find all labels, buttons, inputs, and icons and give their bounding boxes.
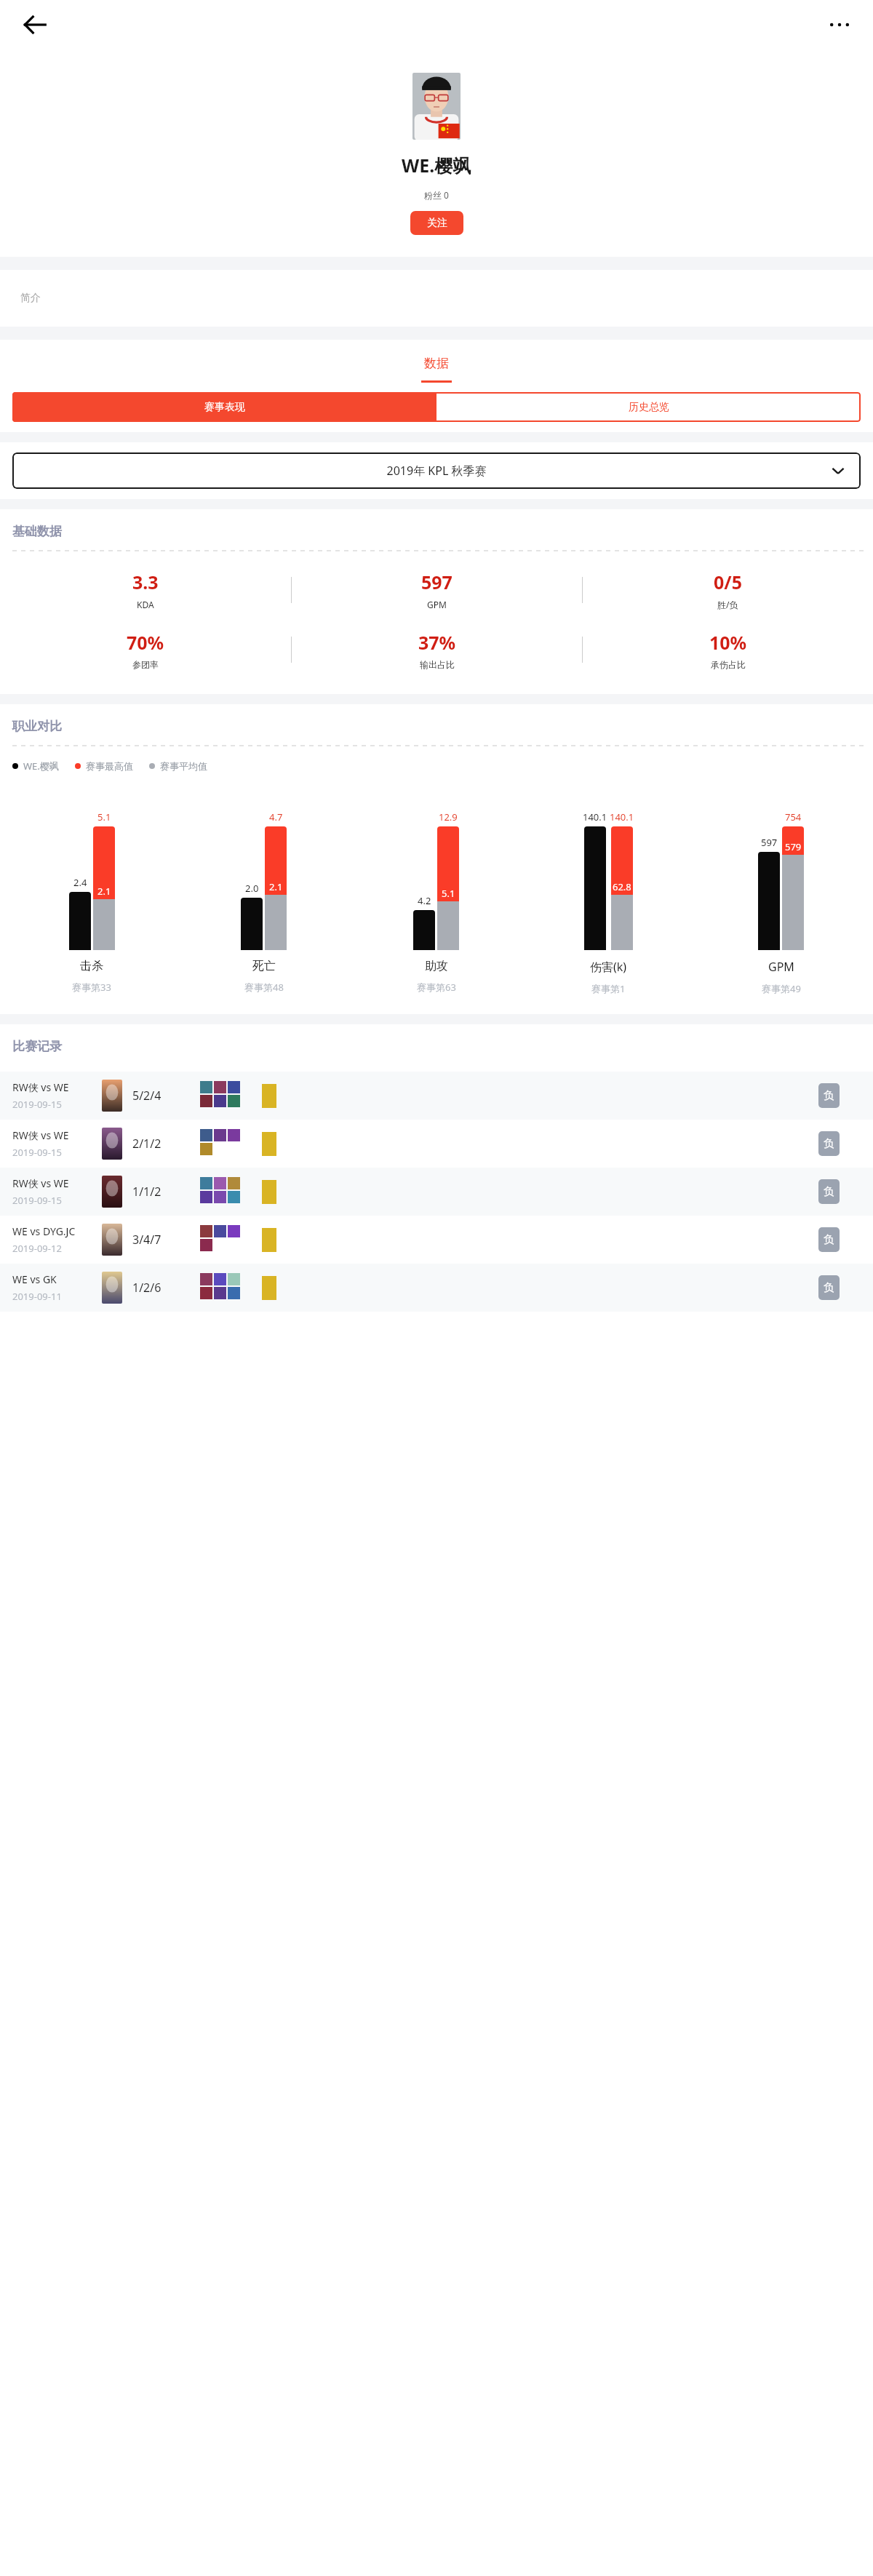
staticText: 赛事平均值 [160, 760, 207, 772]
staticText: 140.1 [583, 810, 607, 824]
staticText: 负 [824, 1137, 834, 1151]
button[interactable]: RW侠 vs WE [0, 1168, 873, 1216]
staticText: 1/2/6 [132, 1280, 183, 1296]
staticText: 赛事第63 [417, 981, 456, 994]
staticText: 伤害(k) [590, 959, 627, 975]
staticText: 赛事第1 [591, 982, 626, 995]
staticText: RW侠 vs WE [12, 1176, 69, 1190]
staticText: RW侠 vs WE [12, 1128, 69, 1142]
staticText: 4.7 [269, 810, 283, 824]
staticText: 赛事第49 [762, 982, 801, 995]
staticText: GPM [427, 599, 447, 610]
staticText: 职业对比 [12, 719, 62, 734]
staticText: 赛事最高值 [86, 760, 133, 772]
staticText: 死亡 [252, 959, 276, 973]
staticText: 2/1/2 [132, 1136, 183, 1152]
staticText: 12.9 [439, 810, 458, 824]
staticText: 击杀 [80, 959, 103, 973]
staticText: 比赛记录 [12, 1039, 62, 1054]
staticText: 赛事第33 [72, 981, 111, 994]
button[interactable]: 历史总览 [436, 392, 861, 422]
button[interactable]: Back [16, 6, 54, 44]
staticText: WE.樱飒 [402, 153, 471, 178]
staticText: 70% [127, 630, 164, 655]
button[interactable]: RW侠 vs WE [0, 1120, 873, 1168]
staticText: 3/4/7 [132, 1232, 183, 1248]
staticText: 负 [824, 1281, 834, 1295]
staticText: 37% [418, 630, 456, 655]
staticText: 1/1/2 [132, 1184, 183, 1200]
staticText: 579 [785, 840, 802, 853]
staticText: 2019-09-15 [12, 1146, 62, 1159]
button[interactable]: 2019年 KPL 秋季赛 [12, 452, 861, 489]
staticText: 负 [824, 1089, 834, 1103]
button[interactable]: 数据 [421, 356, 452, 383]
staticText: 2019-09-11 [12, 1290, 62, 1303]
staticText: 4.2 [418, 894, 431, 907]
staticText: 负 [824, 1185, 834, 1199]
staticText: 2.4 [73, 876, 87, 889]
staticText: 关注 [427, 217, 447, 230]
button[interactable]: More options [821, 6, 858, 44]
staticText: 简介 [20, 292, 41, 305]
staticText: 粉丝 0 [424, 189, 449, 201]
button[interactable]: RW侠 vs WE [0, 1072, 873, 1120]
staticText: 参团率 [132, 659, 159, 670]
staticText: 2.0 [245, 882, 259, 895]
staticText: 承伤占比 [711, 659, 746, 670]
staticText: 597 [761, 836, 778, 849]
staticText: 助攻 [425, 959, 448, 973]
staticText: 2019年 KPL 秋季赛 [12, 463, 861, 479]
staticText: 2019-09-12 [12, 1242, 62, 1255]
staticText: 历史总览 [629, 401, 669, 414]
button[interactable]: 赛事表现 [12, 392, 436, 422]
staticText: 胜/负 [717, 599, 738, 610]
button[interactable]: 关注 [410, 211, 463, 235]
staticText: 输出占比 [420, 659, 455, 670]
staticText: 2019-09-15 [12, 1194, 62, 1207]
staticText: 5.1 [442, 887, 455, 900]
staticText: 2.1 [97, 885, 111, 898]
staticText: 140.1 [610, 810, 634, 824]
button[interactable]: WE vs DYG.JC [0, 1216, 873, 1264]
staticText: GPM [768, 959, 794, 975]
staticText: 5/2/4 [132, 1088, 183, 1104]
staticText: 赛事第48 [244, 981, 284, 994]
staticText: 3.3 [132, 570, 159, 594]
staticText: 10% [709, 630, 747, 655]
staticText: 基础数据 [12, 524, 62, 539]
staticText: 0/5 [714, 570, 742, 594]
staticText: 754 [785, 810, 802, 824]
staticText: KDA [137, 599, 154, 610]
staticText: 负 [824, 1233, 834, 1247]
button[interactable]: WE vs GK [0, 1264, 873, 1312]
staticText: 597 [421, 570, 453, 594]
staticText: 赛事表现 [204, 401, 245, 414]
staticText: WE vs DYG.JC [12, 1224, 76, 1238]
staticText: 数据 [424, 356, 449, 371]
staticText: 2019-09-15 [12, 1098, 62, 1111]
staticText: 5.1 [97, 810, 111, 824]
staticText: WE.樱飒 [23, 759, 59, 773]
staticText: 2.1 [269, 880, 283, 893]
staticText: WE vs GK [12, 1272, 57, 1286]
staticText: 62.8 [613, 880, 631, 893]
staticText: RW侠 vs WE [12, 1080, 69, 1094]
